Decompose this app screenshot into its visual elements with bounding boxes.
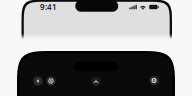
button[interactable]: Flashlight <box>33 76 43 86</box>
button[interactable]: Unlock <box>91 77 101 86</box>
staticText: 9:41 <box>40 2 57 12</box>
button[interactable]: Settings <box>149 76 159 85</box>
button[interactable]: Camera <box>46 76 56 86</box>
